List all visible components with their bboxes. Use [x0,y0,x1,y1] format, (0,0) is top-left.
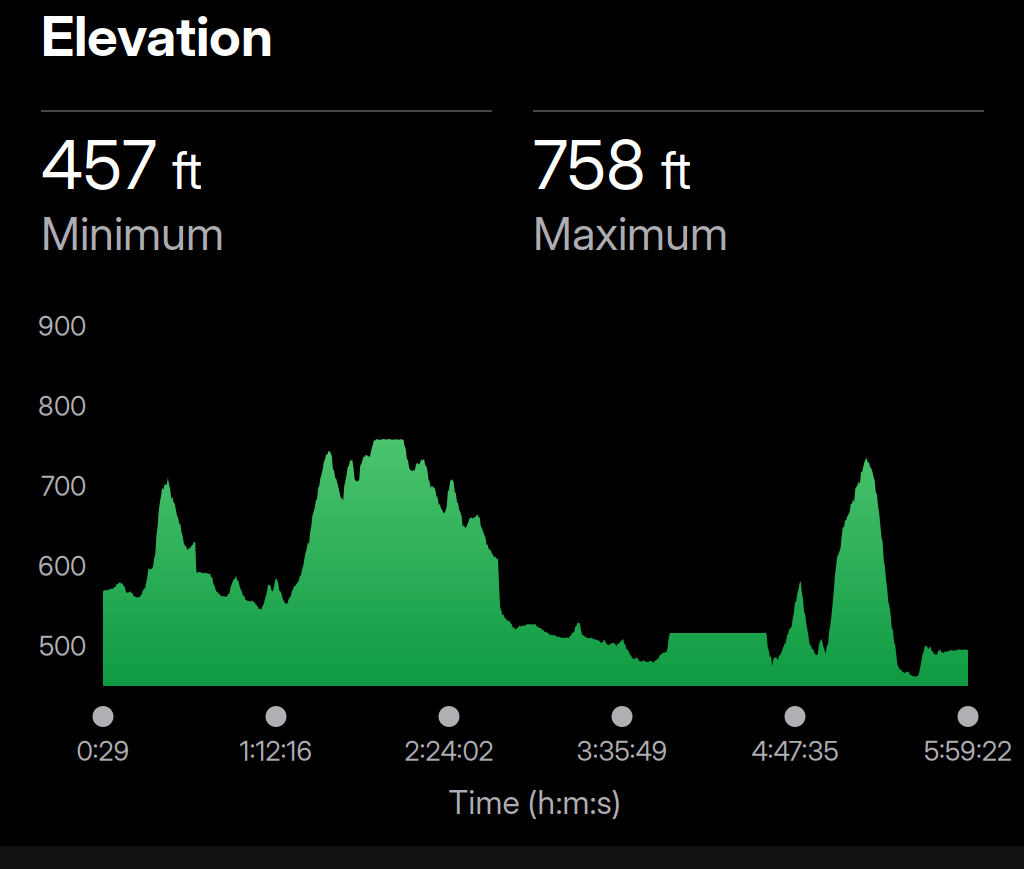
staticText: 600 [38,550,86,582]
staticText: 1:12:16 [239,735,312,767]
staticText: Minimum [41,206,224,261]
button[interactable]: Elevation chart [103,381,968,686]
staticText: 5:59:22 [924,735,1012,767]
button[interactable]: 457 [41,0,492,150]
staticText: 500 [39,630,86,662]
staticText: 3:35:49 [576,735,667,767]
staticText: 457 [41,123,157,205]
staticText: ft [172,138,202,201]
staticText: 0:29 [76,735,129,767]
staticText: 4:47:35 [751,735,838,767]
staticText: Maximum [533,206,728,261]
staticText: 700 [41,470,86,502]
button[interactable]: 758 [533,0,984,150]
staticText: 758 [533,123,646,205]
staticText: 900 [38,310,86,342]
staticText: ft [661,138,691,201]
staticText: Elevation [41,3,273,69]
staticText: 800 [38,390,86,422]
staticText: 2:24:02 [404,735,493,767]
staticText: Time (h:m:s) [448,783,621,822]
